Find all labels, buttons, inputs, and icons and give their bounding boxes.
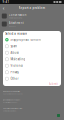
staticText: ‹: [3, 4, 5, 12]
staticText: Inappropriate content: [10, 38, 41, 41]
button[interactable]: Misleading: [3, 56, 61, 62]
staticText: Usually within 24 hours: [2, 102, 17, 103]
staticText: Misleading: [10, 57, 25, 61]
staticText: Reports are confidential: [2, 91, 19, 92]
button[interactable]: Inappropriate content: [3, 36, 61, 43]
staticText: Privacy: [10, 70, 18, 74]
staticText: image.png: [9, 25, 16, 27]
staticText: Violence: [10, 64, 23, 67]
staticText: Submit: [49, 82, 58, 86]
button[interactable]: Conversation: [0, 12, 64, 20]
staticText: Conversation: [9, 13, 27, 17]
button[interactable]: Violence: [3, 62, 61, 69]
staticText: Learn more about our rules: [2, 108, 22, 109]
staticText: 9:41: [2, 0, 9, 4]
staticText: Community guidelines: [2, 110, 16, 112]
staticText: Spam: [10, 44, 16, 48]
button[interactable]: Back: [1, 4, 6, 12]
staticText: Abuse: [10, 51, 19, 54]
staticText: We review every report: [2, 99, 19, 101]
button[interactable]: Other: [3, 75, 61, 82]
button[interactable]: Spam: [3, 43, 61, 49]
staticText: Select a reason: [5, 32, 27, 35]
staticText: Report a problem: [18, 6, 45, 10]
button[interactable]: Attachment: [0, 20, 64, 28]
staticText: Other: [10, 77, 18, 80]
button[interactable]: Privacy: [3, 69, 61, 75]
button[interactable]: Abuse: [3, 49, 61, 56]
staticText: Attachment: [9, 21, 24, 25]
button[interactable]: Submit: [48, 82, 59, 86]
